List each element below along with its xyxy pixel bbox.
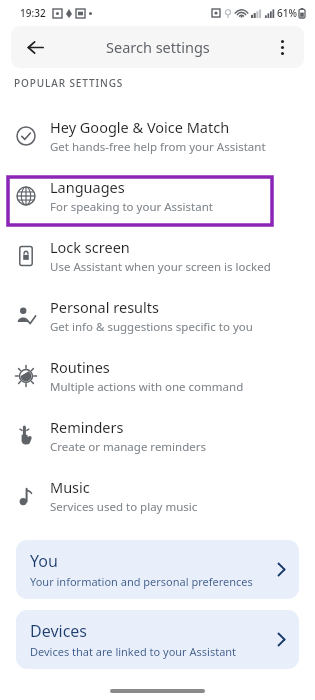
button[interactable]: Devices [16, 610, 299, 669]
button[interactable]: Lock screen [0, 226, 315, 286]
staticText: Use Assistant when your screen is locked [50, 259, 271, 275]
staticText: Multiple actions with one command [50, 379, 244, 395]
staticText: Search settings [106, 37, 210, 57]
staticText: Languages [50, 177, 125, 197]
staticText: Your information and personal preference… [30, 574, 253, 589]
button[interactable]: Personal results [0, 286, 315, 346]
staticText: Reminders [50, 417, 124, 437]
button[interactable]: Hey Google & Voice Match [0, 106, 315, 166]
staticText: Hey Google & Voice Match [50, 117, 230, 137]
staticText: 61% [277, 6, 297, 20]
button[interactable]: Reminders [0, 406, 315, 466]
staticText: Get info & suggestions specific to you [50, 319, 253, 335]
staticText: Personal results [50, 297, 159, 317]
staticText: Get hands-free help from your Assistant [50, 139, 266, 155]
staticText: You [30, 550, 58, 572]
staticText: Create or manage reminders [50, 439, 207, 455]
staticText: Music [50, 477, 90, 497]
button[interactable]: Back [18, 30, 52, 64]
staticText: Routines [50, 357, 110, 377]
staticText: Services used to play music [50, 499, 198, 515]
button[interactable]: Routines [0, 346, 315, 406]
staticText: For speaking to your Assistant [50, 199, 213, 215]
button[interactable]: You [16, 540, 299, 599]
button[interactable]: Languages [0, 166, 315, 226]
staticText: POPULAR SETTINGS [14, 76, 124, 90]
staticText: 19:32 [20, 6, 46, 20]
button[interactable]: More options [266, 31, 298, 63]
staticText: Lock screen [50, 237, 130, 257]
button[interactable]: Music [0, 466, 315, 526]
staticText: Devices that are linked to your Assistan… [30, 644, 237, 659]
staticText: Devices [30, 620, 88, 642]
